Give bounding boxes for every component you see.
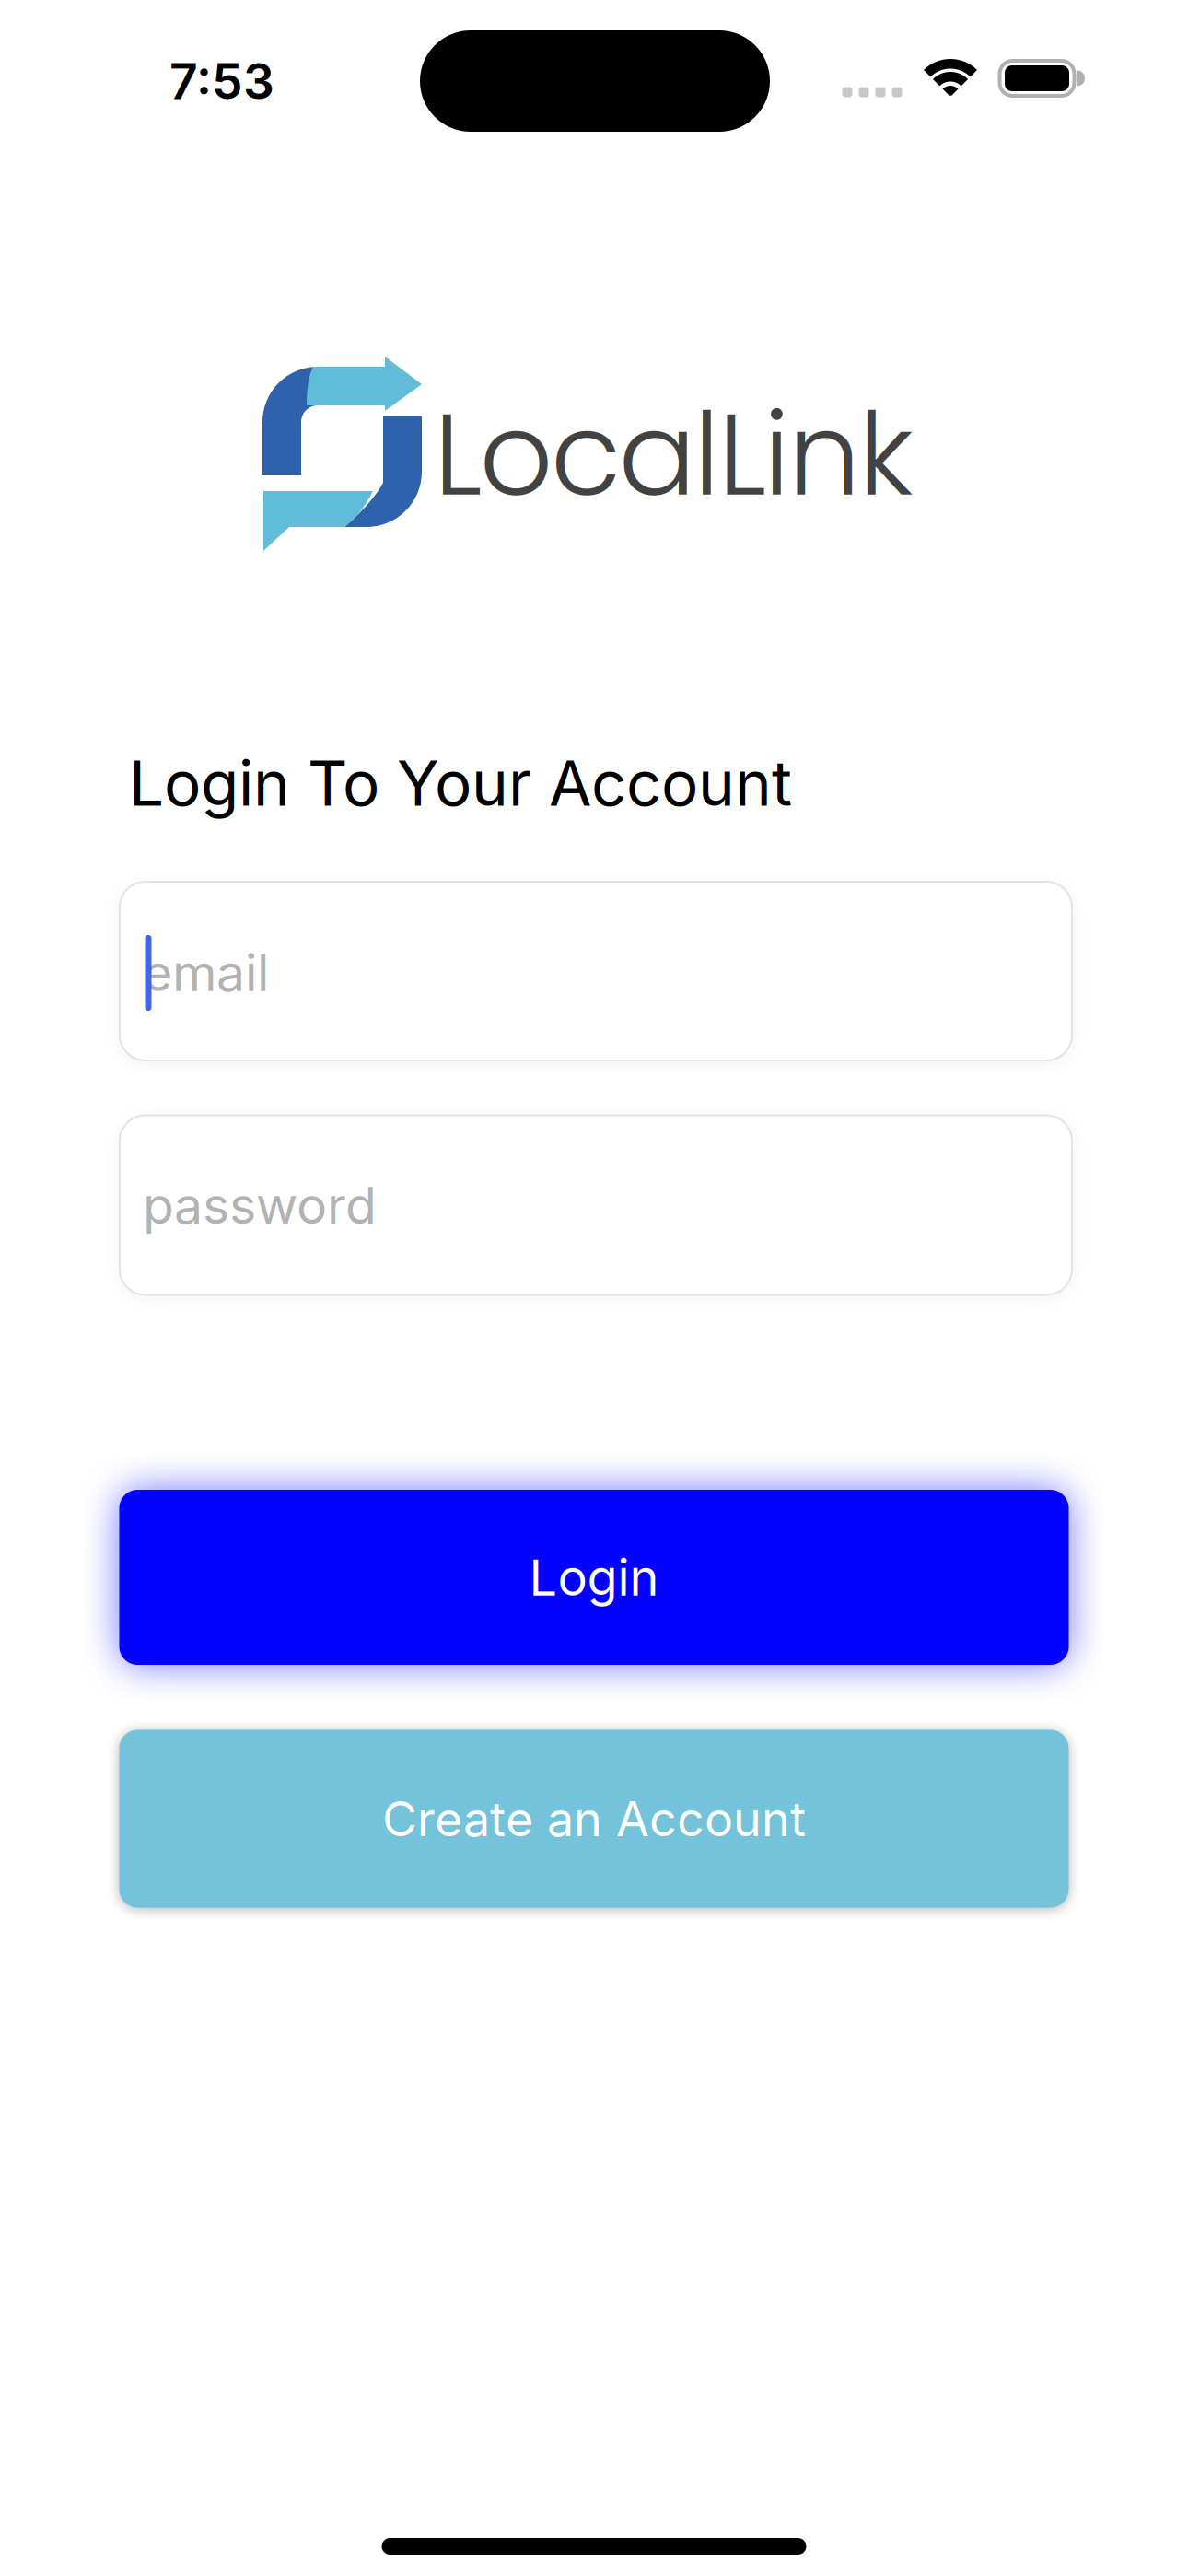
staticText: email — [143, 942, 269, 1003]
staticText: LocalLink — [434, 374, 914, 535]
staticText: password — [143, 1174, 377, 1236]
staticText: Login To Your Account — [129, 746, 792, 821]
staticText: 7:53 — [169, 51, 274, 111]
staticText: Create an Account — [382, 1790, 806, 1848]
staticText: Login — [529, 1547, 659, 1607]
